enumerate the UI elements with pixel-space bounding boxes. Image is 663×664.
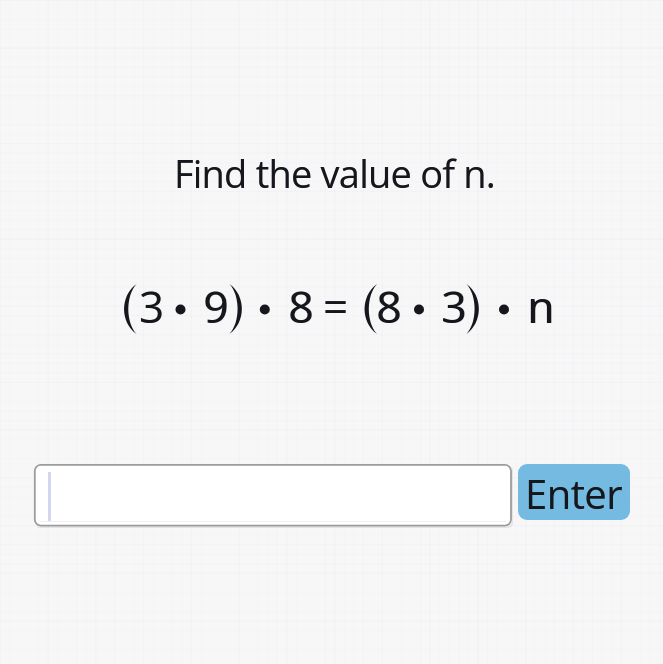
staticText: =	[323, 276, 349, 336]
staticText: Find the value of n.	[3, 147, 663, 199]
staticText: 8	[288, 276, 314, 336]
staticText: 3	[139, 276, 165, 336]
staticText: Enter	[525, 466, 623, 520]
button[interactable]: Answer input field	[34, 464, 513, 528]
staticText: =	[323, 276, 349, 336]
staticText: n	[528, 276, 555, 336]
staticText: 9	[204, 276, 230, 336]
staticText: 3	[139, 276, 165, 336]
staticText: 8	[376, 276, 402, 336]
staticText: n	[527, 276, 554, 336]
staticText: 3	[441, 276, 467, 336]
staticText: Enter	[525, 466, 623, 520]
staticText: Find the value of n.	[3, 147, 663, 199]
staticText: 8	[289, 276, 315, 336]
staticText: 3	[442, 276, 468, 336]
staticText: 8	[377, 276, 403, 336]
button[interactable]: Enter	[518, 464, 630, 520]
staticText: 9	[203, 276, 229, 336]
